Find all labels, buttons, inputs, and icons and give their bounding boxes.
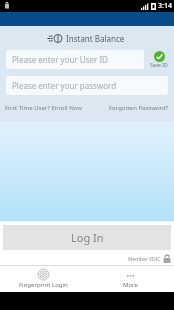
button[interactable]: Log In xyxy=(3,225,171,250)
button[interactable]: Save ID xyxy=(148,51,170,69)
staticText: Please enter your password xyxy=(12,80,117,91)
staticText: Instant Balance xyxy=(66,33,125,44)
button[interactable]: Fingerprint Login xyxy=(0,266,87,292)
button[interactable]: Please enter your password xyxy=(6,76,168,95)
staticText: Fingerprint Login xyxy=(19,281,68,289)
staticText: Please enter your User ID xyxy=(12,54,108,65)
staticText: 3:14 xyxy=(158,1,172,11)
button[interactable]: Please enter your User ID xyxy=(6,50,144,69)
button[interactable]: First Time User? Enroll Now xyxy=(5,104,82,112)
staticText: First Time User? Enroll Now xyxy=(5,104,82,112)
staticText: Log In xyxy=(71,230,104,245)
button[interactable]: Forgotten Password? xyxy=(109,104,169,112)
button[interactable]: More xyxy=(87,266,174,292)
staticText: More xyxy=(123,281,138,289)
staticText: Save ID xyxy=(150,62,168,69)
button[interactable]: Instant Balance xyxy=(0,32,174,45)
staticText: Forgotten Password? xyxy=(109,104,169,112)
staticText: Member FDIC xyxy=(128,256,161,263)
other: Secure xyxy=(163,254,171,264)
